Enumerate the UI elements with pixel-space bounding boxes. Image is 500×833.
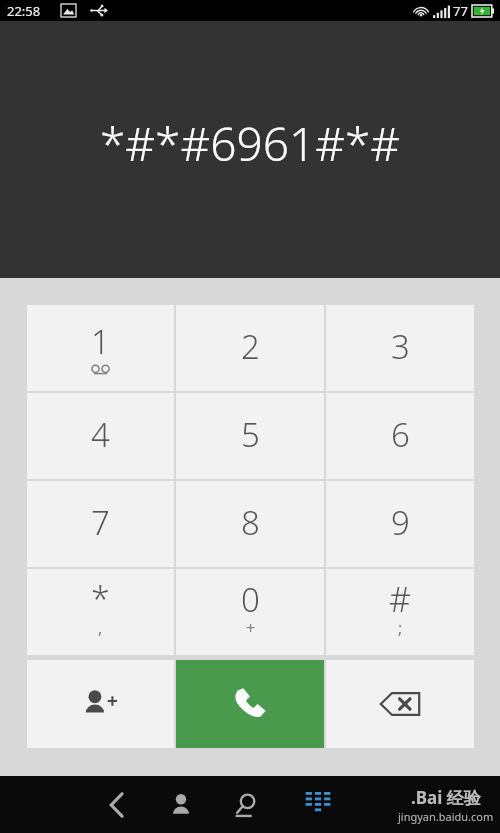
button[interactable]: Contacts: [157, 781, 205, 829]
staticText: *#*#6961#*#: [0, 112, 500, 175]
button[interactable]: *: [27, 569, 174, 655]
staticText: 77: [453, 2, 468, 20]
staticText: *: [91, 576, 110, 622]
button[interactable]: Call: [176, 660, 324, 748]
staticText: 4: [91, 412, 110, 457]
staticText: +: [246, 617, 256, 639]
button[interactable]: 7: [27, 481, 174, 567]
staticText: #: [389, 576, 411, 622]
button[interactable]: Add contact: [27, 660, 174, 748]
staticText: 0: [241, 577, 260, 622]
staticText: ,: [98, 617, 103, 639]
button[interactable]: 3: [326, 305, 474, 391]
button[interactable]: 6: [326, 393, 474, 479]
staticText: .Bai 经验: [411, 786, 481, 809]
button[interactable]: Dialpad: [294, 781, 342, 829]
staticText: 9: [391, 500, 410, 545]
staticText: 2: [241, 324, 260, 369]
button[interactable]: 4: [27, 393, 174, 479]
button[interactable]: 0: [176, 569, 324, 655]
button[interactable]: Back: [93, 781, 141, 829]
staticText: 3: [391, 324, 410, 369]
button[interactable]: 1: [27, 305, 174, 391]
button[interactable]: Search: [222, 781, 270, 829]
staticText: 6: [391, 412, 410, 457]
staticText: 1: [91, 319, 110, 364]
staticText: 8: [241, 500, 260, 545]
staticText: 5: [241, 412, 260, 457]
button[interactable]: Delete: [326, 660, 474, 748]
staticText: 7: [91, 500, 110, 545]
staticText: jingyan.baidu.com: [398, 809, 494, 824]
button[interactable]: 9: [326, 481, 474, 567]
button[interactable]: 2: [176, 305, 324, 391]
staticText: ;: [398, 617, 403, 639]
staticText: 22:58: [7, 2, 41, 20]
button[interactable]: 5: [176, 393, 324, 479]
button[interactable]: 8: [176, 481, 324, 567]
button[interactable]: #: [326, 569, 474, 655]
